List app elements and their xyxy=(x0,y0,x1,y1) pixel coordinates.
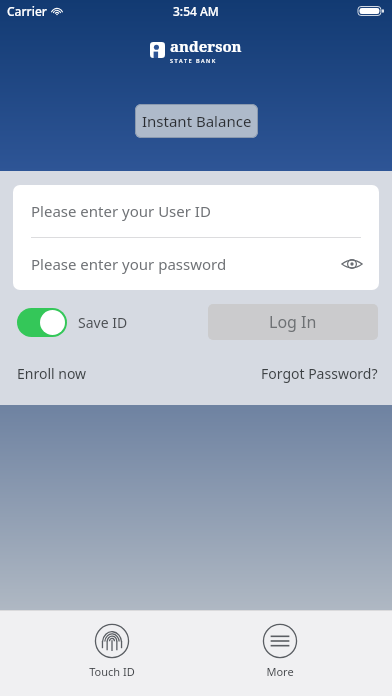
staticText: Log In xyxy=(269,311,317,333)
staticText: 3:54 AM xyxy=(173,3,219,19)
staticText: S T A T E B A N K xyxy=(170,57,216,64)
staticText: Touch ID xyxy=(89,664,135,679)
button[interactable]: Please enter your password xyxy=(13,238,379,290)
staticText: Enroll now xyxy=(17,364,87,383)
staticText: Instant Balance xyxy=(142,111,252,131)
button[interactable]: Forgot Password? xyxy=(261,364,378,383)
button[interactable]: More xyxy=(225,618,335,683)
button[interactable]: Log In xyxy=(208,304,378,340)
button[interactable]: Show password xyxy=(335,247,369,281)
staticText: Forgot Password? xyxy=(261,364,378,383)
staticText: Please enter your password xyxy=(31,254,227,274)
staticText: anderson xyxy=(170,36,242,56)
staticText: Carrier xyxy=(7,3,47,19)
other: More xyxy=(262,623,298,659)
button[interactable]: Please enter your User ID xyxy=(13,185,379,237)
button[interactable]: Touch ID xyxy=(57,618,167,683)
staticText: More xyxy=(266,664,294,679)
other: Touch ID xyxy=(94,623,130,659)
button[interactable]: Save ID toggle xyxy=(17,308,67,337)
button[interactable]: Save ID toggle xyxy=(17,308,128,337)
staticText: Save ID xyxy=(78,313,128,332)
staticText: Please enter your User ID xyxy=(31,201,211,221)
button[interactable]: Instant Balance xyxy=(135,104,258,138)
button[interactable]: Enroll now xyxy=(17,364,87,383)
